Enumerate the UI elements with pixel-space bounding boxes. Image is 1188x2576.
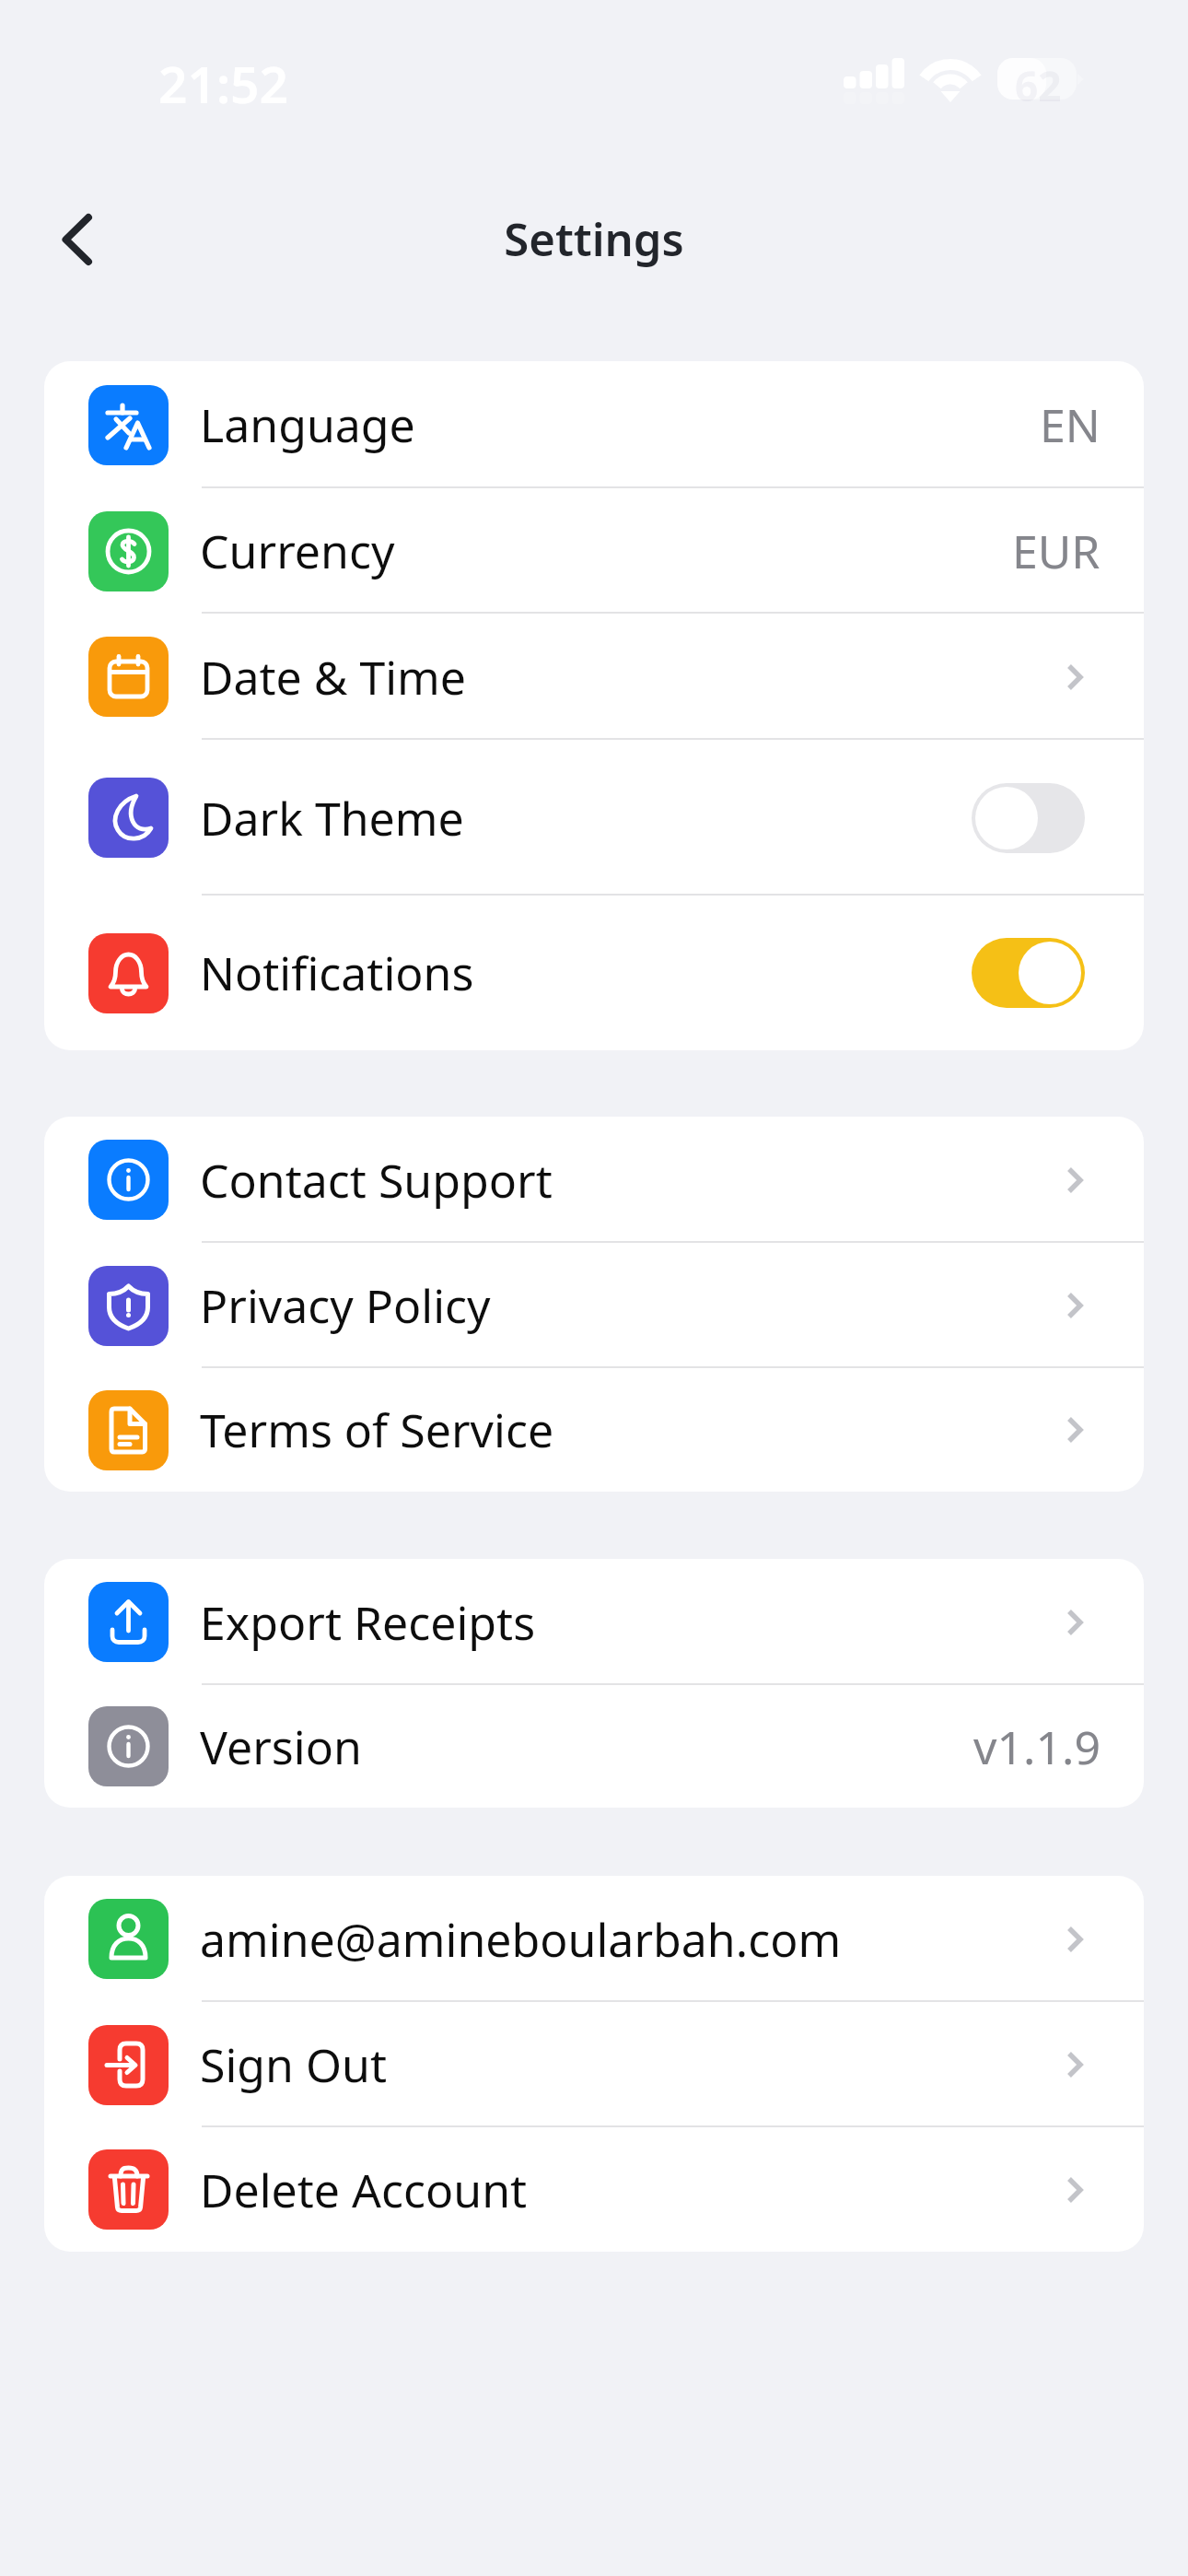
button[interactable]: Privacy Policy	[44, 1243, 1144, 1368]
button[interactable]: Back	[36, 199, 117, 280]
staticText: Settings	[0, 208, 1188, 270]
staticText: Delete Account	[200, 2159, 528, 2221]
button[interactable]: Version	[44, 1685, 1144, 1808]
button[interactable]: Toggle on	[972, 938, 1085, 1008]
staticText: amine@amineboularbah.com	[200, 1908, 842, 1971]
staticText: Privacy Policy	[200, 1274, 491, 1337]
staticText: Export Receipts	[200, 1591, 536, 1654]
button[interactable]: Export Receipts	[44, 1559, 1144, 1685]
staticText: EN	[1040, 393, 1101, 456]
staticText: Sign Out	[200, 2033, 387, 2096]
button[interactable]: Delete Account	[44, 2127, 1144, 2252]
staticText: Version	[200, 1715, 362, 1778]
button[interactable]: Currency	[44, 488, 1144, 614]
button[interactable]: Contact Support	[44, 1117, 1144, 1243]
staticText: 21:52	[158, 49, 289, 118]
button[interactable]: Language	[44, 361, 1144, 488]
staticText: Date & Time	[200, 646, 467, 708]
staticText: Notifications	[200, 942, 474, 1004]
button[interactable]: Toggle off	[972, 783, 1085, 853]
staticText: 62	[1015, 58, 1062, 113]
button[interactable]: Dark Theme	[44, 740, 1144, 896]
button[interactable]: Notifications	[44, 896, 1144, 1050]
button[interactable]: Sign Out	[44, 2002, 1144, 2127]
button[interactable]: Terms of Service	[44, 1368, 1144, 1492]
button[interactable]: amine@amineboularbah.com	[44, 1876, 1144, 2002]
staticText: EUR	[1012, 520, 1101, 582]
staticText: Terms of Service	[200, 1399, 554, 1461]
staticText: Language	[200, 393, 415, 456]
button[interactable]: Date & Time	[44, 614, 1144, 740]
staticText: v1.1.9	[973, 1715, 1101, 1778]
staticText: Currency	[200, 520, 395, 582]
staticText: Contact Support	[200, 1149, 553, 1212]
staticText: Dark Theme	[200, 787, 464, 849]
